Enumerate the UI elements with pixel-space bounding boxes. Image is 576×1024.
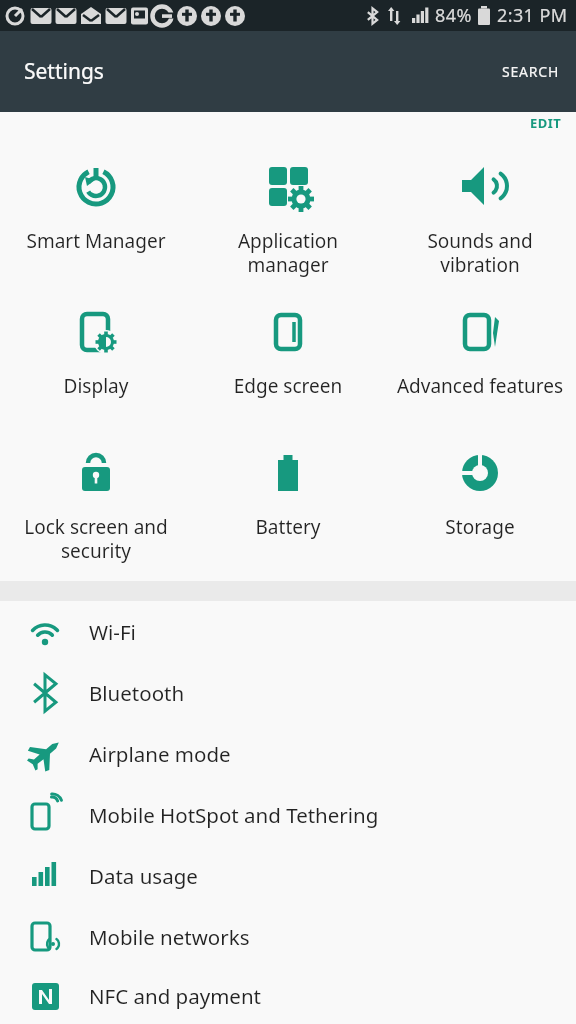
staticText: Mobile networks [89,923,250,951]
button[interactable]: NFC and payment [0,967,576,1024]
button[interactable]: Storage [384,450,576,540]
staticText: Smart Manager [0,228,192,254]
staticText: Display [0,373,192,399]
staticText: Wi-Fi [89,618,136,646]
button[interactable]: Edge screen [192,309,384,399]
button[interactable]: Battery [192,450,384,540]
staticText: Advanced features [384,373,576,399]
staticText: Settings [24,57,104,86]
staticText: Storage [384,514,576,540]
staticText: 84% [435,3,472,28]
button[interactable]: Smart Manager [0,163,192,254]
button[interactable]: SEARCH [486,31,576,112]
staticText: 2:31 PM [497,3,568,28]
button[interactable]: EDIT [530,114,562,132]
button[interactable]: Mobile HotSpot and Tethering [0,784,576,845]
staticText: Application manager [192,228,384,277]
staticText: NFC and payment [89,982,261,1010]
staticText: Edge screen [192,373,384,399]
button[interactable]: Lock screen and security [0,450,192,563]
button[interactable]: Advanced features [384,309,576,399]
staticText: Bluetooth [89,679,185,707]
button[interactable]: Wi-Fi [0,601,576,662]
staticText: Mobile HotSpot and Tethering [89,801,379,829]
staticText: Sounds and vibration [384,228,576,277]
staticText: Lock screen and security [0,514,192,563]
button[interactable]: Bluetooth [0,662,576,723]
button[interactable]: Mobile networks [0,906,576,967]
button[interactable]: Data usage [0,845,576,906]
staticText: SEARCH [502,62,560,81]
button[interactable]: Sounds and vibration [384,163,576,277]
staticText: Airplane mode [89,740,231,768]
staticText: Battery [192,514,384,540]
button[interactable]: Application manager [192,163,384,277]
button[interactable]: Airplane mode [0,723,576,784]
staticText: EDIT [530,114,562,132]
staticText: Data usage [89,862,198,890]
button[interactable]: Display [0,309,192,399]
